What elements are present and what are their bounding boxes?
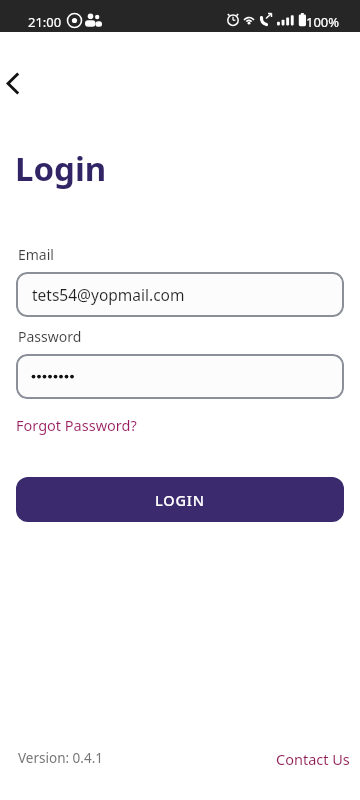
button[interactable]: LOGIN bbox=[16, 477, 344, 522]
staticText: Email bbox=[18, 245, 54, 264]
button[interactable] bbox=[0, 60, 48, 108]
staticText: tets54@yopmail.com bbox=[32, 284, 185, 305]
button[interactable]: Contact Us bbox=[273, 746, 353, 772]
button[interactable] bbox=[16, 354, 344, 399]
staticText: Version: 0.4.1 bbox=[18, 749, 104, 767]
staticText: Forgot Password? bbox=[16, 415, 137, 435]
staticText: 21:00 bbox=[28, 13, 62, 31]
staticText: Contact Us bbox=[276, 749, 350, 769]
staticText: 100% bbox=[306, 13, 340, 31]
staticText: LOGIN bbox=[155, 490, 205, 510]
staticText: Password bbox=[18, 327, 82, 346]
staticText: Login bbox=[15, 146, 107, 191]
button[interactable]: Forgot Password? bbox=[16, 412, 137, 438]
button[interactable]: tets54@yopmail.com bbox=[16, 272, 344, 317]
